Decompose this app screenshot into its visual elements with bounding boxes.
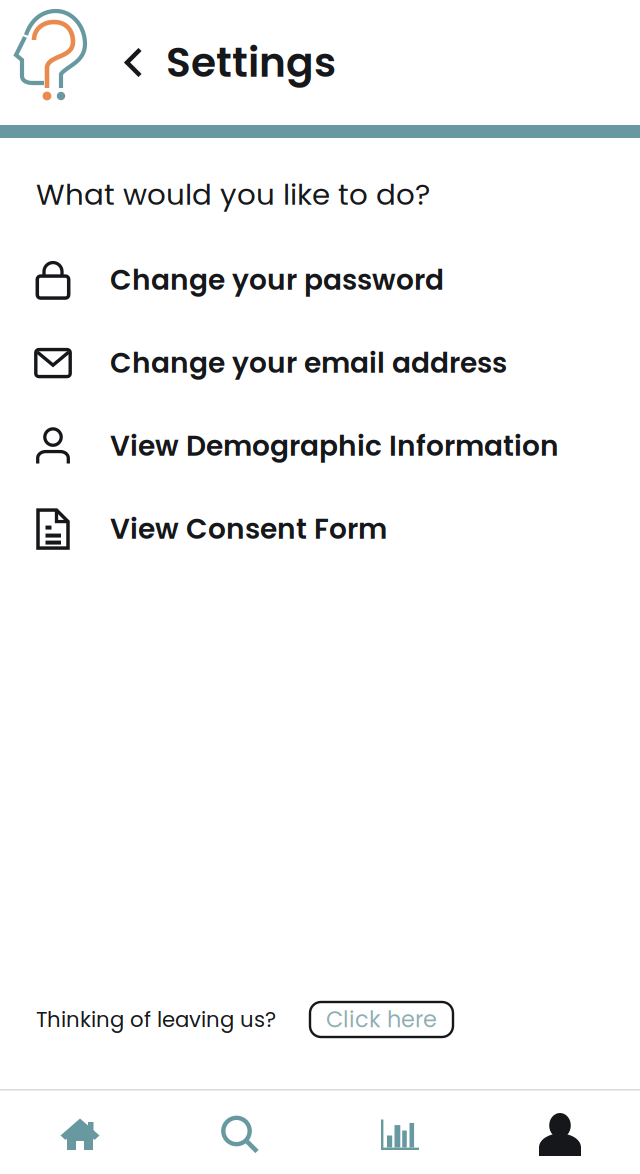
staticText: Settings bbox=[166, 34, 336, 91]
button[interactable]: Back bbox=[102, 46, 166, 78]
button[interactable]: Click here bbox=[310, 1002, 453, 1037]
staticText: View Demographic Information bbox=[110, 426, 559, 466]
staticText: Click here bbox=[326, 1004, 437, 1035]
button[interactable]: Change your password bbox=[0, 249, 640, 311]
staticText: What would you like to do? bbox=[36, 174, 430, 215]
button[interactable]: Profile bbox=[480, 1095, 640, 1174]
staticText: Change your email address bbox=[110, 343, 507, 383]
button[interactable]: Home bbox=[0, 1095, 160, 1174]
staticText: View Consent Form bbox=[110, 509, 387, 549]
staticText: Change your password bbox=[110, 260, 444, 300]
button[interactable]: Progress bbox=[320, 1095, 480, 1174]
staticText: Thinking of leaving us? bbox=[36, 1005, 276, 1034]
button[interactable]: View Consent Form bbox=[0, 498, 640, 560]
button[interactable]: Search bbox=[160, 1095, 320, 1174]
button[interactable]: Change your email address bbox=[0, 332, 640, 394]
button[interactable]: View Demographic Information bbox=[0, 415, 640, 477]
